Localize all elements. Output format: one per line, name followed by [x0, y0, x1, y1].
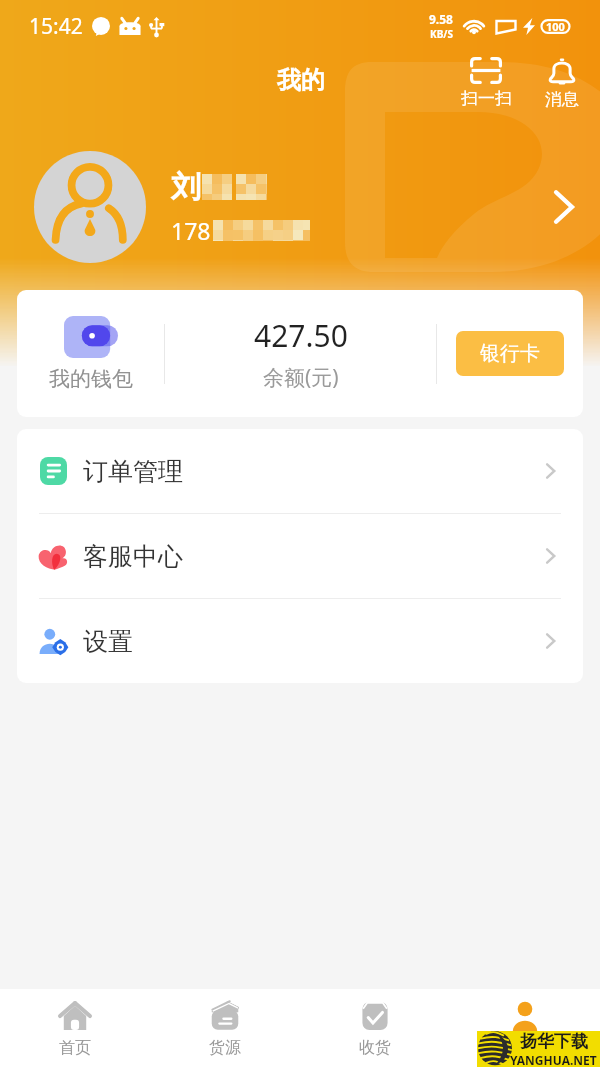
- staticText: 设置: [83, 626, 133, 657]
- button[interactable]: 收货: [300, 989, 450, 1067]
- staticText: 扬华下载: [520, 1031, 588, 1052]
- staticText: 余额(元): [263, 363, 339, 392]
- button[interactable]: 订单管理: [17, 429, 583, 513]
- button[interactable]: 我的钱包: [17, 316, 164, 392]
- staticText: 我的: [509, 1038, 541, 1058]
- button[interactable]: 我的: [450, 989, 600, 1067]
- button[interactable]: 首页: [0, 989, 150, 1067]
- button[interactable]: 设置: [17, 599, 583, 683]
- staticText: 15:42: [29, 12, 83, 41]
- staticText: 178: [171, 215, 211, 246]
- button[interactable]: Scan QR code: [458, 52, 514, 109]
- staticText: 我的: [277, 65, 325, 95]
- staticText: KB/S: [430, 27, 453, 41]
- staticText: 我的钱包: [49, 366, 133, 392]
- staticText: 9.58: [429, 11, 453, 27]
- staticText: 收货: [359, 1038, 391, 1058]
- staticText: YANGHUA.NET: [510, 1052, 597, 1067]
- staticText: 客服中心: [83, 541, 183, 572]
- staticText: 刘: [171, 168, 201, 206]
- staticText: 订单管理: [83, 456, 183, 487]
- staticText: 银行卡: [480, 341, 540, 366]
- staticText: 货源: [209, 1038, 241, 1058]
- button[interactable]: 银行卡: [456, 331, 564, 376]
- staticText: 427.50: [254, 315, 348, 356]
- button[interactable]: Messages: [534, 52, 590, 110]
- button[interactable]: 客服中心: [17, 514, 583, 598]
- staticText: 消息: [545, 89, 579, 110]
- button[interactable]: 货源: [150, 989, 300, 1067]
- staticText: 首页: [59, 1038, 91, 1058]
- staticText: 100: [546, 19, 565, 34]
- staticText: 扫一扫: [461, 88, 512, 109]
- button[interactable]: 刘: [0, 146, 600, 268]
